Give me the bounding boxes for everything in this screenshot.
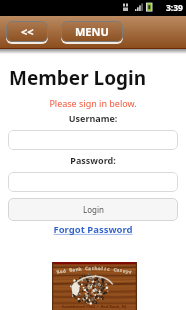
button[interactable]: <<	[6, 21, 48, 44]
button[interactable]	[52, 262, 137, 310]
staticText: Password:	[0, 154, 186, 166]
button[interactable]	[8, 172, 178, 192]
staticText: Please sign in below.	[0, 97, 186, 109]
button[interactable]	[8, 130, 178, 150]
button[interactable]: MENU	[61, 21, 123, 44]
button[interactable]: Login	[8, 198, 178, 221]
staticText: Login	[83, 204, 104, 215]
staticText: MENU	[75, 24, 109, 39]
staticText: 3:39	[166, 2, 183, 14]
button[interactable]: Forgot Password	[0, 223, 186, 236]
staticText: Member Login	[9, 65, 147, 91]
staticText: <<	[21, 24, 34, 39]
staticText: Username:	[0, 112, 186, 124]
